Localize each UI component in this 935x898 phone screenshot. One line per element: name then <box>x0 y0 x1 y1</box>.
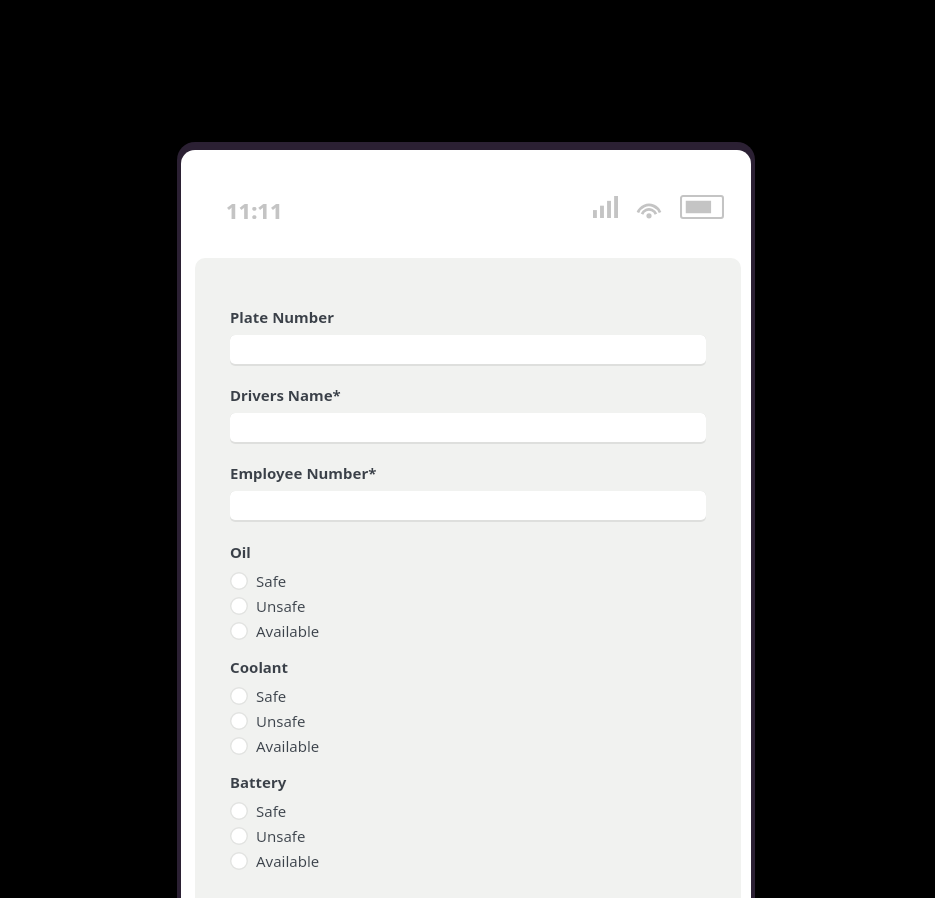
staticText: 11:11 <box>226 195 283 225</box>
staticText: Oil <box>230 542 251 562</box>
button[interactable]: Unsafe <box>230 708 306 733</box>
button[interactable]: Safe <box>230 798 287 823</box>
staticText: Unsafe <box>256 826 306 846</box>
button[interactable]: Available <box>230 848 320 873</box>
staticText: Available <box>256 736 320 756</box>
button[interactable]: Safe <box>230 568 287 593</box>
staticText: Coolant <box>230 657 289 677</box>
staticText: Employee Number* <box>230 463 377 483</box>
button[interactable]: Unsafe <box>230 823 306 848</box>
staticText: Safe <box>256 571 287 591</box>
staticText: Available <box>256 621 320 641</box>
button[interactable]: Safe <box>230 683 287 708</box>
button[interactable]: Unsafe <box>230 593 306 618</box>
staticText: Available <box>256 851 320 871</box>
staticText: Unsafe <box>256 711 306 731</box>
staticText: Unsafe <box>256 596 306 616</box>
staticText: Plate Number <box>230 307 334 327</box>
button[interactable]: Available <box>230 618 320 643</box>
staticText: Battery <box>230 772 287 792</box>
staticText: Safe <box>256 686 287 706</box>
button[interactable]: Available <box>230 733 320 758</box>
staticText: Drivers Name* <box>230 385 341 405</box>
staticText: Safe <box>256 801 287 821</box>
